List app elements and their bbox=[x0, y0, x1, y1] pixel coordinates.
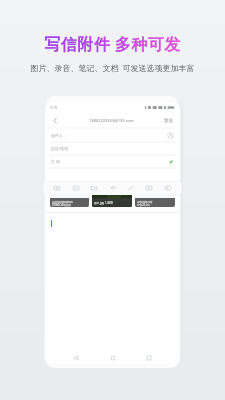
staticText: 公司报表数据明细 105KB .xlsx文档 bbox=[52, 200, 73, 206]
button[interactable]: 图片_jpg 1.2MB bbox=[92, 181, 132, 207]
button[interactable]: Card bbox=[162, 182, 174, 194]
button[interactable]: Recents bbox=[143, 352, 155, 364]
staticText: 主 题 bbox=[51, 159, 61, 164]
staticText: 图片、录音、笔记、文档 可发送选项更加丰富 bbox=[30, 62, 195, 73]
button[interactable]: Back bbox=[70, 352, 82, 364]
button[interactable]: 发送 bbox=[162, 117, 175, 125]
staticText: 语音消息录音 录音25.1秒 bbox=[137, 200, 153, 206]
staticText: 收件人： bbox=[51, 133, 67, 138]
button[interactable]: Cloud bbox=[107, 182, 119, 194]
staticText: 图片_jpg 1.2MB bbox=[94, 201, 113, 205]
button[interactable]: 公司报表数据明细 105KB .xlsx文档 bbox=[50, 181, 89, 207]
button[interactable]: 语音消息录音 录音25.1秒 bbox=[135, 181, 175, 207]
staticText: 写信附件 多种可发 bbox=[44, 33, 181, 55]
button[interactable]: Back bbox=[50, 115, 61, 126]
button[interactable]: Home bbox=[107, 352, 119, 364]
button[interactable]: Note bbox=[125, 182, 137, 194]
staticText: 抄送/密送 bbox=[51, 146, 69, 151]
button[interactable]: Folder bbox=[88, 182, 100, 194]
button[interactable]: Add contact bbox=[167, 132, 174, 139]
button[interactable]: Camera bbox=[51, 182, 63, 194]
staticText: 13802222333@139.com bbox=[89, 118, 134, 123]
staticText: 3:19 bbox=[50, 105, 57, 110]
staticText: 发送 bbox=[164, 118, 173, 124]
button[interactable]: More bbox=[143, 182, 155, 194]
button[interactable]: Photo bbox=[70, 182, 82, 194]
